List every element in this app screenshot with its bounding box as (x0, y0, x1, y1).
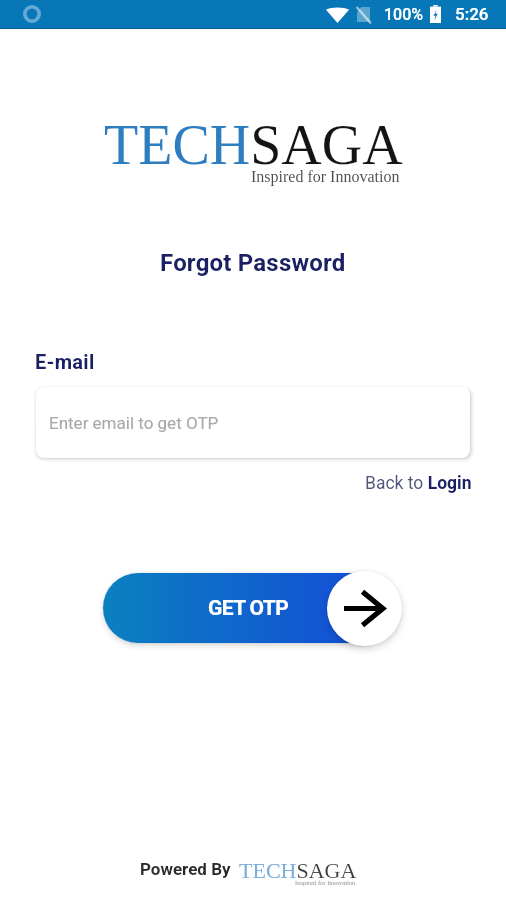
staticText: Forgot Password (160, 249, 346, 277)
staticText: GET OTP (208, 596, 289, 621)
button[interactable]: Back to Login (361, 469, 476, 498)
staticText: Inspired for Innovation (251, 168, 400, 186)
button[interactable]: GET OTP (103, 573, 388, 643)
staticText: Inspired for Innovation (295, 879, 356, 886)
button[interactable]: Enter email to get OTP (36, 387, 470, 458)
staticText: 100% (384, 5, 424, 24)
staticText: TECHSAGA (104, 114, 403, 176)
staticText: E-mail (35, 350, 95, 373)
staticText: Back to Login (365, 473, 472, 494)
staticText: TECHSAGA (239, 858, 357, 882)
staticText: Powered By (140, 859, 231, 879)
staticText: 5:26 (455, 4, 489, 24)
button[interactable]: Submit (327, 571, 402, 646)
staticText: Enter email to get OTP (49, 413, 219, 433)
